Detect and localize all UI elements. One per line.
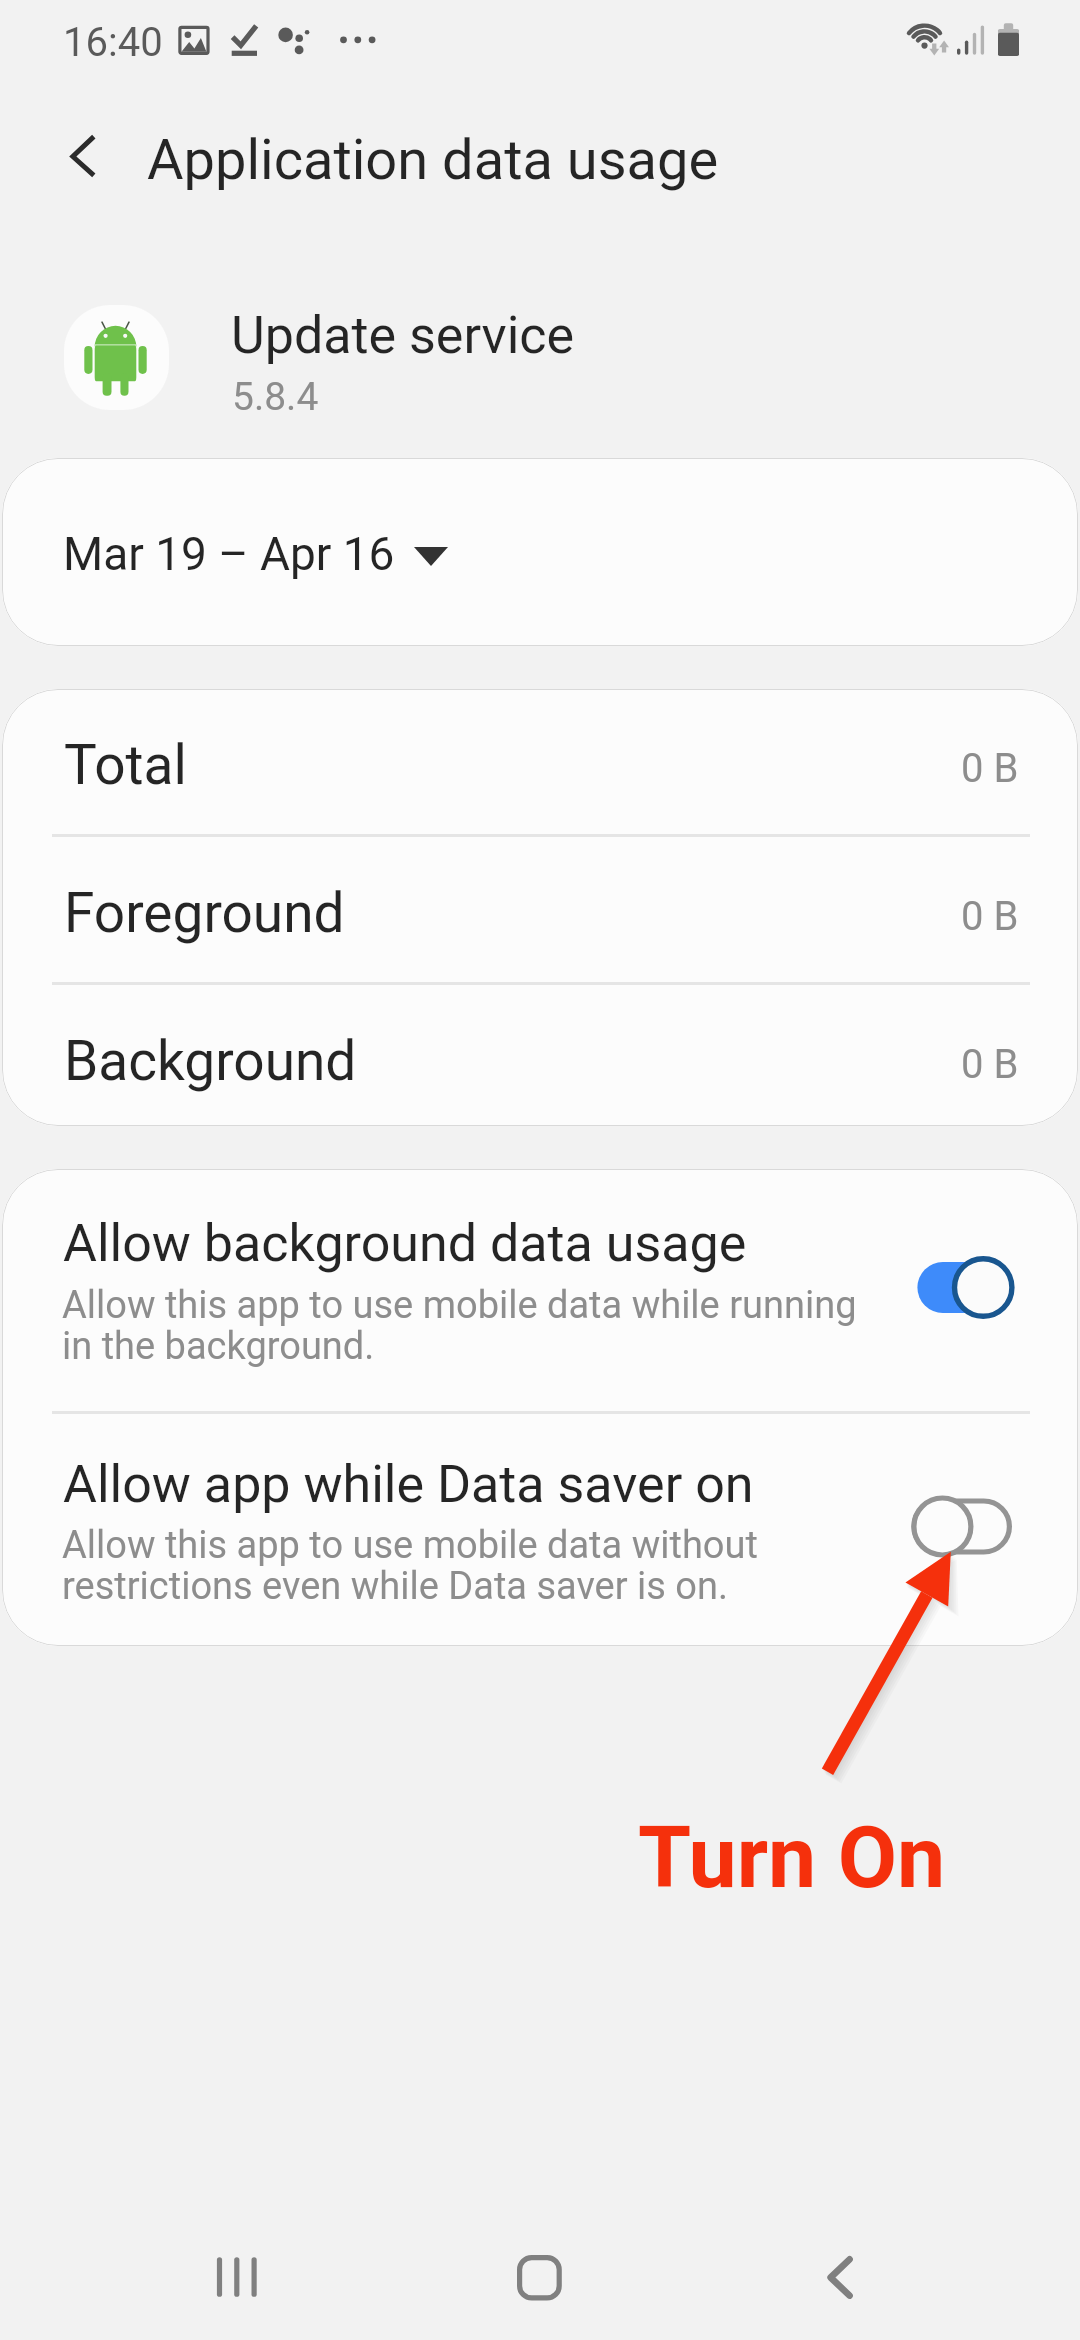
staticText: Foreground: [64, 881, 345, 945]
staticText: Application data usage: [147, 127, 719, 193]
staticText: 16:40: [63, 19, 163, 66]
button[interactable]: Allow background data usage: [2, 1169, 1078, 1411]
staticText: Total: [64, 733, 187, 797]
button[interactable]: Total: [2, 689, 1078, 834]
button[interactable]: Allow app while Data saver on: [2, 1414, 1078, 1646]
button[interactable]: App icon: [64, 305, 169, 410]
staticText: 0 B: [961, 745, 1019, 792]
staticText: Allow app while Data saver on: [63, 1454, 754, 1515]
staticText: Allow this app to use mobile data while …: [62, 1283, 862, 1368]
button[interactable]: Background: [2, 985, 1078, 1126]
button[interactable]: Recent apps: [186, 2232, 286, 2320]
staticText: Update service: [231, 305, 575, 366]
staticText: Mar 19 – Apr 16: [63, 527, 395, 581]
button[interactable]: Navigate up: [34, 120, 110, 196]
button[interactable]: Foreground: [2, 837, 1078, 982]
button[interactable]: Allow background data usage: [910, 1259, 1022, 1323]
staticText: Allow this app to use mobile data withou…: [62, 1523, 862, 1608]
button[interactable]: Back: [795, 2232, 895, 2320]
staticText: 5.8.4: [232, 374, 319, 420]
button[interactable]: Home: [490, 2232, 590, 2320]
staticText: 0 B: [961, 893, 1019, 940]
button[interactable]: Allow app while Data saver on: [910, 1498, 1022, 1562]
staticText: Turn On: [638, 1807, 946, 1908]
staticText: Background: [64, 1029, 357, 1093]
staticText: Allow background data usage: [63, 1213, 747, 1274]
staticText: 0 B: [961, 1041, 1019, 1088]
button[interactable]: Mar 19 – Apr 16: [2, 458, 1078, 646]
